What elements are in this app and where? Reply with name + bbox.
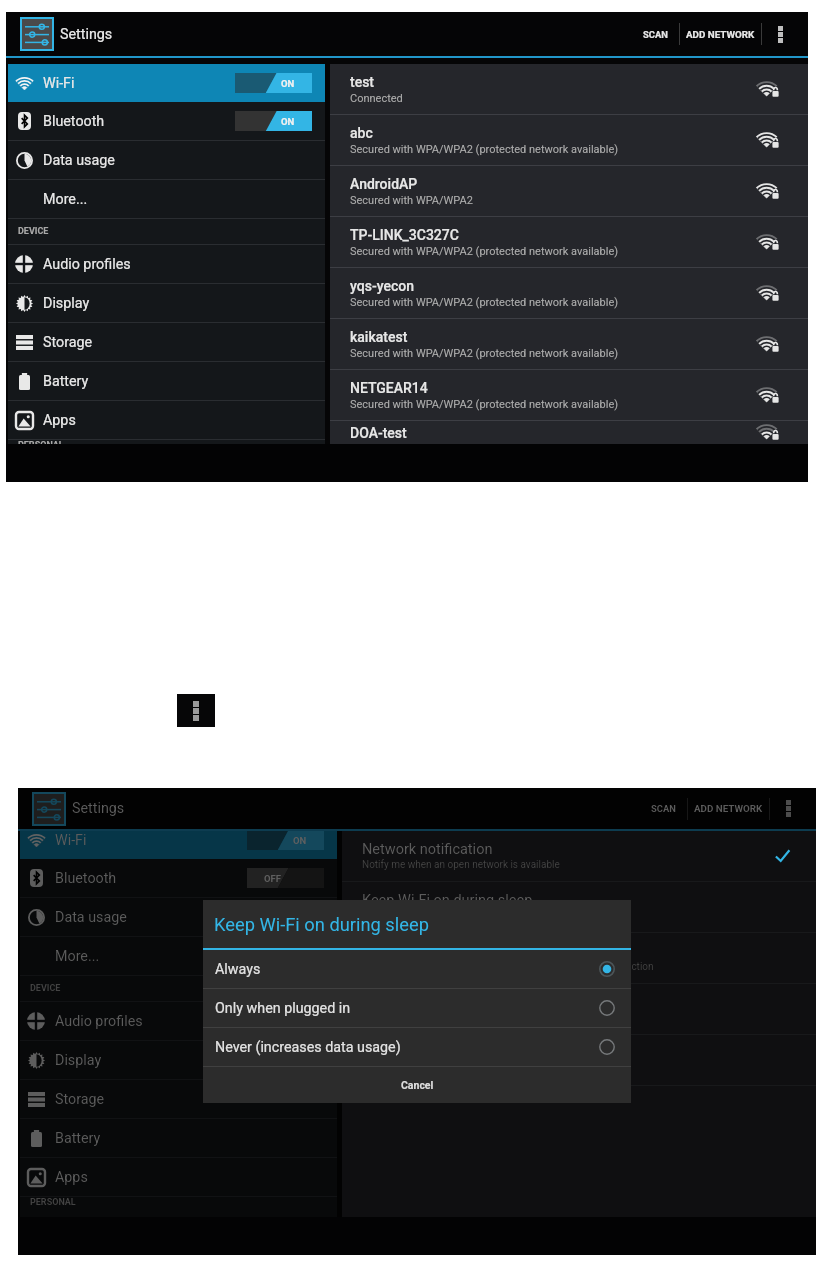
button[interactable]: Keep Wi-Fi on during sleep (342, 882, 816, 932)
staticText: ON (281, 116, 295, 127)
staticText: Secured with WPA/WPA2 (protected network… (350, 398, 619, 411)
button[interactable]: SCAN (632, 12, 679, 56)
staticText: ADD NETWORK (686, 29, 755, 40)
button[interactable]: Bluetooth (20, 859, 337, 897)
button[interactable]: More options (762, 12, 798, 56)
staticText: Secured with WPA/WPA2 (protected network… (350, 347, 619, 360)
button[interactable]: Apps (8, 401, 325, 439)
button[interactable]: test (330, 64, 808, 114)
staticText: Secured with WPA/WPA2 (350, 194, 473, 207)
staticText: NETGEAR14 (350, 380, 428, 396)
button[interactable]: AndroidAP (330, 166, 808, 216)
staticText: Cancel (401, 1079, 434, 1091)
staticText: Apps (43, 412, 76, 429)
button[interactable]: Cancel (203, 1067, 631, 1103)
button[interactable]: Data usage (20, 898, 337, 936)
button[interactable]: Avoid poor connections (342, 933, 816, 983)
button[interactable]: Network notification (342, 831, 816, 881)
staticText: Never (increases data usage) (215, 1039, 401, 1056)
button[interactable]: Wi-Fi optimization (342, 984, 816, 1034)
staticText: OFF (264, 873, 281, 884)
staticText: ON (281, 78, 295, 89)
staticText: Bluetooth (43, 113, 105, 130)
button[interactable]: Data usage (8, 141, 325, 179)
staticText: Avoid poor connections (362, 943, 514, 960)
staticText: Keep Wi-Fi on during sleep (214, 914, 429, 935)
staticText: Bluetooth (55, 870, 117, 887)
staticText: Connected (350, 92, 403, 105)
staticText: Secured with WPA/WPA2 (protected network… (350, 245, 619, 258)
staticText: SCAN (643, 29, 668, 40)
staticText: Always (215, 961, 261, 978)
staticText: PERSONAL (30, 1197, 76, 1207)
button[interactable]: Wi-Fi (8, 64, 325, 102)
staticText: Wi-Fi (55, 832, 87, 849)
staticText: TP-LINK_3C327C (350, 227, 459, 243)
button[interactable]: Wi-Fi (20, 831, 337, 859)
button[interactable]: Display (20, 1041, 337, 1079)
staticText: MAC address (362, 1052, 449, 1069)
button[interactable]: TP-LINK_3C327C (330, 217, 808, 267)
button[interactable]: Battery (20, 1119, 337, 1157)
button[interactable]: Battery (8, 362, 325, 400)
button[interactable]: ADD NETWORK (680, 12, 761, 56)
button[interactable]: ON (235, 111, 312, 131)
staticText: kaikatest (350, 329, 408, 345)
staticText: More... (55, 948, 100, 965)
staticText: Wi-Fi (43, 75, 75, 92)
staticText: Display (55, 1052, 102, 1069)
button[interactable]: Audio profiles (8, 245, 325, 283)
button[interactable]: kaikatest (330, 319, 808, 369)
button[interactable]: Storage (8, 323, 325, 361)
button[interactable]: Display (8, 284, 325, 322)
button[interactable]: Storage (20, 1080, 337, 1118)
button[interactable]: Never (increases data usage) (203, 1028, 631, 1066)
button[interactable]: MAC address (342, 1035, 816, 1085)
staticText: More... (43, 191, 88, 208)
staticText: ON (293, 835, 307, 846)
staticText: Always (362, 910, 394, 922)
button[interactable]: ON (235, 73, 312, 93)
button[interactable]: Apps (20, 1158, 337, 1196)
staticText: Battery (55, 1130, 101, 1147)
button[interactable]: OFF (247, 868, 324, 888)
button[interactable]: yqs-yecon (330, 268, 808, 318)
staticText: yqs-yecon (350, 278, 414, 294)
staticText: Keep Wi-Fi on during sleep (362, 892, 533, 909)
staticText: SCAN (651, 803, 676, 814)
staticText: ADD NETWORK (694, 803, 763, 814)
button[interactable]: More options (770, 788, 806, 829)
staticText: DOA-test (350, 425, 407, 441)
staticText: Apps (55, 1169, 88, 1186)
staticText: Settings (60, 26, 113, 43)
button[interactable]: ADD NETWORK (688, 788, 769, 829)
button[interactable]: Bluetooth (8, 102, 325, 140)
button[interactable]: NETGEAR14 (330, 370, 808, 420)
staticText: abc (350, 125, 373, 141)
staticText: Notify me when an open network is availa… (362, 859, 560, 871)
button[interactable]: More... (20, 937, 337, 975)
button[interactable]: Audio profiles (20, 1002, 337, 1040)
staticText: Data usage (55, 909, 127, 926)
button[interactable]: DOA-test (330, 421, 808, 444)
staticText: Display (43, 295, 90, 312)
button[interactable]: Overflow menu (177, 694, 215, 727)
staticText: test (350, 74, 375, 90)
staticText: AndroidAP (350, 176, 418, 192)
staticText: Audio profiles (55, 1013, 143, 1030)
staticText: Audio profiles (43, 256, 131, 273)
button[interactable]: SCAN (640, 788, 687, 829)
button[interactable]: ON (247, 831, 324, 850)
staticText: Data usage (43, 152, 115, 169)
staticText: Only when plugged in (215, 1000, 351, 1017)
staticText: PERSONAL (18, 440, 64, 444)
staticText: DEVICE (30, 983, 61, 994)
button[interactable]: Only when plugged in (203, 989, 631, 1027)
button[interactable]: More... (8, 180, 325, 218)
staticText: Network notification (362, 841, 493, 858)
staticText: Battery (43, 373, 89, 390)
button[interactable]: abc (330, 115, 808, 165)
button[interactable]: Always (203, 950, 631, 988)
